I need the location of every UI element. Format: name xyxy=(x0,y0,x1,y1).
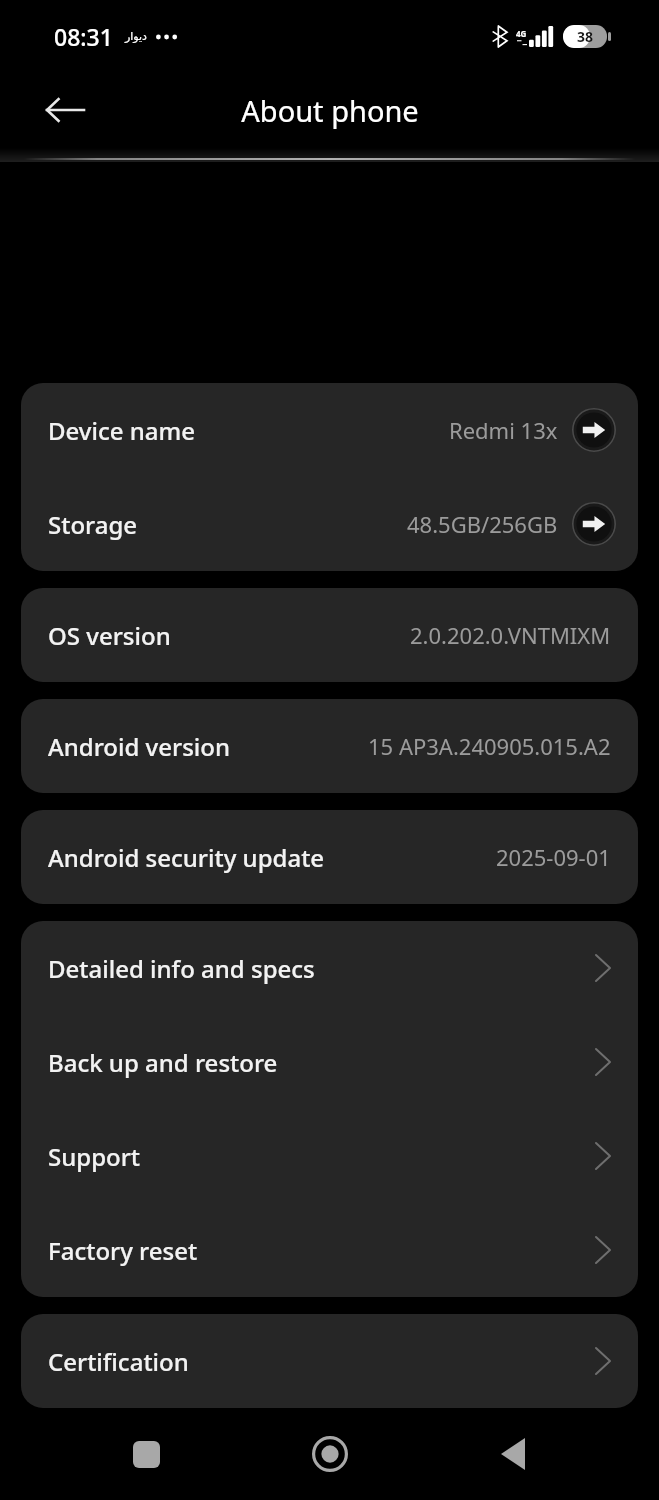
button[interactable]: Device name xyxy=(21,383,638,477)
staticText: 2025-09-01 xyxy=(496,842,611,872)
staticText: Android version xyxy=(48,730,231,763)
button[interactable]: Open xyxy=(572,408,616,452)
staticText: About phone xyxy=(241,91,419,130)
button[interactable]: Home xyxy=(292,1416,368,1492)
staticText: Detailed info and specs xyxy=(48,952,315,985)
staticText: 4G xyxy=(516,28,527,39)
button[interactable]: Open xyxy=(572,502,616,546)
staticText: 08:31 xyxy=(54,21,113,52)
staticText: 48.5GB/256GB xyxy=(407,509,558,539)
staticText: 15 AP3A.240905.015.A2 xyxy=(368,731,611,761)
staticText: Back up and restore xyxy=(48,1046,278,1079)
staticText: Redmi 13x xyxy=(449,415,558,445)
button[interactable]: OS version xyxy=(21,588,638,682)
button[interactable]: Back up and restore xyxy=(21,1015,638,1109)
staticText: Android security update xyxy=(48,841,325,874)
staticText: Support xyxy=(48,1140,141,1173)
staticText: Factory reset xyxy=(48,1234,198,1267)
button[interactable]: Back xyxy=(30,81,100,139)
button[interactable]: Storage xyxy=(21,477,638,571)
staticText: Certification xyxy=(48,1345,189,1378)
button[interactable]: Android security update xyxy=(21,810,638,904)
button[interactable]: Certification xyxy=(21,1314,638,1408)
staticText: Storage xyxy=(48,508,138,541)
staticText: 2.0.202.0.VNTMIXM xyxy=(410,620,611,650)
button[interactable]: Android version xyxy=(21,699,638,793)
staticText: 38 xyxy=(577,27,594,46)
staticText: Device name xyxy=(48,414,196,447)
button[interactable]: Back xyxy=(475,1416,551,1492)
button[interactable]: Recent apps xyxy=(108,1416,184,1492)
staticText: دیوار xyxy=(125,30,148,43)
button[interactable]: Detailed info and specs xyxy=(21,921,638,1015)
staticText: OS version xyxy=(48,619,171,652)
button[interactable]: Support xyxy=(21,1109,638,1203)
button[interactable]: Factory reset xyxy=(21,1203,638,1297)
